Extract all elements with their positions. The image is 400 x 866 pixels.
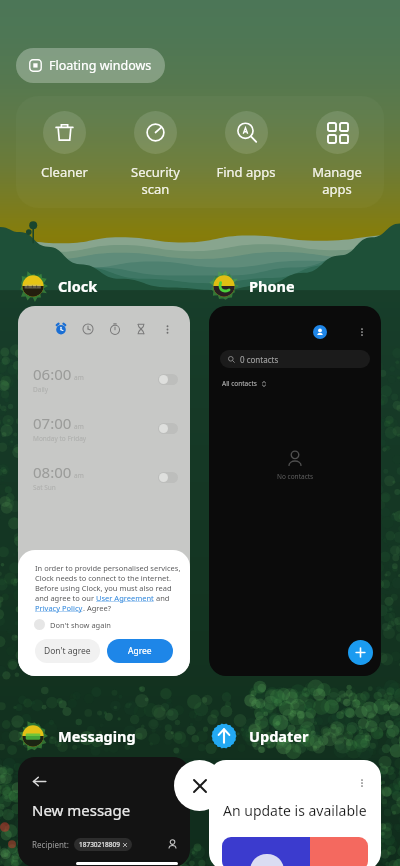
staticText: Daily	[33, 385, 49, 394]
button[interactable]: User Agreement	[96, 593, 154, 603]
button[interactable]: Security scan	[111, 111, 199, 198]
staticText: No contacts	[277, 472, 314, 481]
staticText: 0 contacts	[240, 354, 279, 365]
button[interactable]: Privacy Policy	[35, 603, 83, 613]
staticText: New message	[32, 800, 131, 820]
button[interactable]: 0 contacts	[209, 306, 381, 676]
staticText: Sat Sun	[33, 483, 56, 492]
button[interactable]: Don't agree	[35, 639, 100, 663]
staticText: am	[74, 471, 84, 480]
staticText: Messaging	[58, 726, 136, 746]
button[interactable]: Clock	[16, 269, 98, 302]
staticText: Monday to Friday	[33, 434, 87, 443]
staticText: Don't show again	[50, 620, 111, 630]
button[interactable]: Agree	[107, 639, 173, 663]
button[interactable]: Close	[174, 760, 225, 811]
staticText: Don't agree	[44, 645, 91, 657]
staticText: and	[154, 593, 170, 603]
button[interactable]: Floating windows	[16, 48, 165, 83]
staticText: 07:00	[33, 413, 72, 433]
staticText: Updater	[249, 726, 309, 746]
button[interactable]: An update is available	[209, 760, 381, 866]
button[interactable]: Manage apps	[293, 111, 381, 198]
staticText: Before using Clock, you must also read	[35, 583, 172, 593]
button[interactable]: Back	[18, 757, 190, 866]
staticText: Find apps	[216, 163, 276, 181]
button[interactable]: Updater	[207, 719, 309, 752]
button[interactable]: Phone	[207, 269, 295, 302]
staticText: 18730218809	[79, 840, 120, 849]
staticText: 06:00	[33, 364, 72, 384]
staticText: In order to provide personalised service…	[35, 563, 181, 573]
staticText: All contacts	[222, 379, 257, 388]
staticText: . Agree?	[83, 603, 112, 613]
staticText: Security scan	[131, 163, 180, 198]
staticText: and agree to our	[35, 593, 96, 603]
staticText: Clock needs to connect to the internet.	[35, 573, 172, 583]
button[interactable]: Add contact	[348, 640, 373, 665]
button[interactable]: Messaging	[16, 719, 136, 752]
staticText: Floating windows	[49, 57, 152, 74]
staticText: Clock	[58, 276, 98, 296]
button[interactable]: Back	[32, 774, 47, 789]
staticText: Cleaner	[41, 163, 88, 181]
staticText: am	[74, 422, 84, 431]
button[interactable]: Don't show again	[34, 619, 111, 630]
staticText: 08:00	[33, 462, 72, 482]
staticText: am	[74, 373, 84, 382]
staticText: Manage apps	[312, 163, 362, 198]
staticText: Recipient:	[32, 839, 69, 850]
staticText: An update is available	[223, 801, 367, 820]
button[interactable]: Find apps	[202, 111, 290, 181]
staticText: Phone	[249, 276, 295, 296]
button[interactable]: 06:00	[18, 306, 190, 676]
staticText: Agree	[128, 645, 152, 657]
button[interactable]: Cleaner	[20, 111, 108, 181]
